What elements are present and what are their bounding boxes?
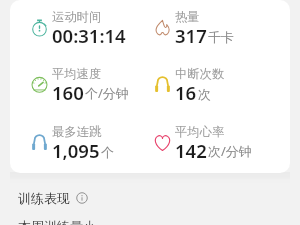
staticText: 317: [175, 23, 207, 48]
staticText: 热量: [175, 9, 200, 24]
staticText: 运动时间: [52, 9, 102, 24]
staticText: 千卡: [208, 29, 234, 45]
button[interactable]: 中断次数: [154, 60, 272, 100]
staticText: 160: [52, 80, 84, 105]
staticText: 中断次数: [175, 66, 225, 81]
button[interactable]: 热量: [154, 3, 272, 43]
other: Info: [76, 192, 88, 204]
staticText: 最多连跳: [52, 124, 102, 139]
staticText: 1,095: [52, 138, 100, 163]
staticText: 训练表现: [18, 190, 70, 206]
staticText: 平均速度: [52, 66, 102, 81]
staticText: 16: [175, 80, 197, 105]
button[interactable]: 平均心率: [154, 118, 272, 158]
button[interactable]: 平均速度: [31, 60, 149, 100]
button[interactable]: 最多连跳: [31, 118, 149, 158]
staticText: 次: [198, 86, 211, 102]
staticText: 次/分钟: [208, 142, 252, 160]
button[interactable]: 运动时间: [31, 3, 149, 43]
staticText: 00:31:14: [52, 23, 126, 48]
staticText: 个/分钟: [85, 84, 129, 102]
staticText: 个: [101, 144, 114, 160]
staticText: 本周训练量小: [18, 218, 96, 225]
button[interactable]: 训练表现: [18, 190, 88, 206]
staticText: 平均心率: [175, 124, 225, 139]
staticText: 142: [175, 138, 207, 163]
